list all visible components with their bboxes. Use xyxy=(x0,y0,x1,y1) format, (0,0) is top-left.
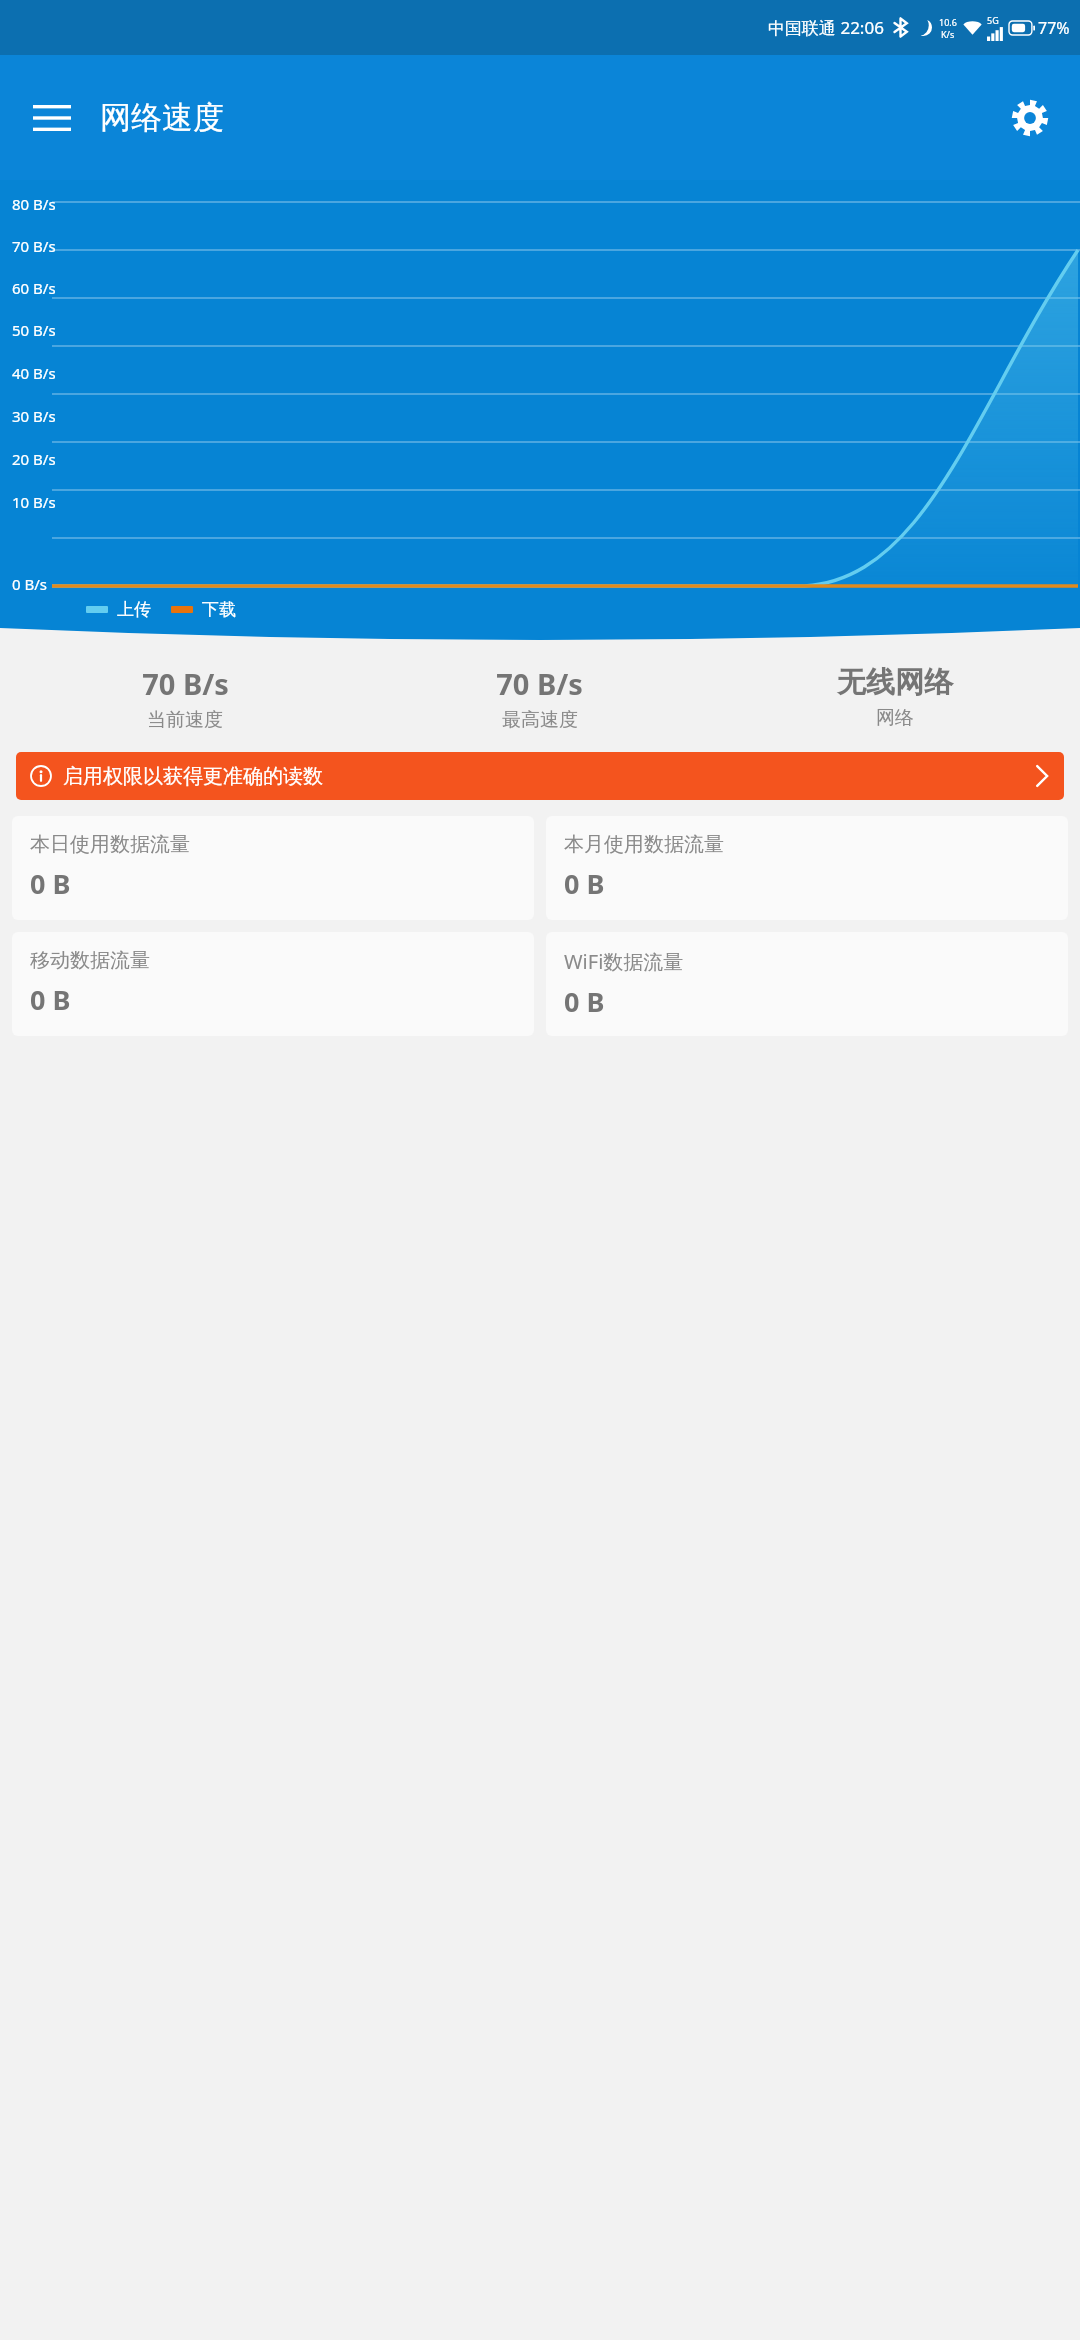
staticText: 0 B/s xyxy=(12,574,47,594)
staticText: 50 B/s xyxy=(12,320,56,340)
staticText: 70 B/s xyxy=(12,236,56,256)
staticText: 当前速度 xyxy=(147,708,223,732)
staticText: 网络 xyxy=(876,706,914,730)
staticText: 10.6 xyxy=(939,16,957,28)
staticText: 20 B/s xyxy=(12,449,56,469)
staticText: 本月使用数据流量 xyxy=(564,832,724,857)
button[interactable]: 启用权限以获得更准确的读数 xyxy=(16,752,1064,800)
staticText: 中国联通 22:06 xyxy=(768,16,884,39)
button[interactable]: 本月使用数据流量 xyxy=(546,816,1068,920)
staticText: 30 B/s xyxy=(12,406,56,426)
button[interactable]: WiFi数据流量 xyxy=(546,932,1068,1036)
staticText: 0 B xyxy=(30,865,71,902)
staticText: 10 B/s xyxy=(12,492,56,512)
button[interactable]: 70 B/s xyxy=(362,660,717,736)
button[interactable]: Settings xyxy=(1002,90,1058,146)
button[interactable]: 无线网络 xyxy=(717,660,1072,734)
staticText: 下载 xyxy=(202,599,236,620)
staticText: 80 B/s xyxy=(12,194,56,214)
staticText: 0 B xyxy=(564,865,605,902)
button[interactable]: 移动数据流量 xyxy=(12,932,534,1036)
staticText: 40 B/s xyxy=(12,363,56,383)
staticText: 70 B/s xyxy=(496,664,583,703)
staticText: 60 B/s xyxy=(12,278,56,298)
staticText: 最高速度 xyxy=(502,708,578,732)
button[interactable]: Open navigation menu xyxy=(24,90,80,146)
button[interactable]: 本日使用数据流量 xyxy=(12,816,534,920)
staticText: K/s xyxy=(941,28,955,40)
staticText: 本日使用数据流量 xyxy=(30,832,190,857)
staticText: 网络速度 xyxy=(100,98,224,137)
staticText: 0 B xyxy=(30,981,71,1018)
staticText: 5G xyxy=(987,14,999,26)
staticText: WiFi数据流量 xyxy=(564,948,684,975)
staticText: 70 B/s xyxy=(142,664,229,703)
staticText: 上传 xyxy=(117,599,151,620)
staticText: 启用权限以获得更准确的读数 xyxy=(63,764,1034,789)
staticText: 移动数据流量 xyxy=(30,948,150,973)
button[interactable]: 70 B/s xyxy=(8,660,362,736)
staticText: 77% xyxy=(1038,17,1070,39)
staticText: 0 B xyxy=(564,983,605,1020)
staticText: 无线网络 xyxy=(837,664,953,701)
